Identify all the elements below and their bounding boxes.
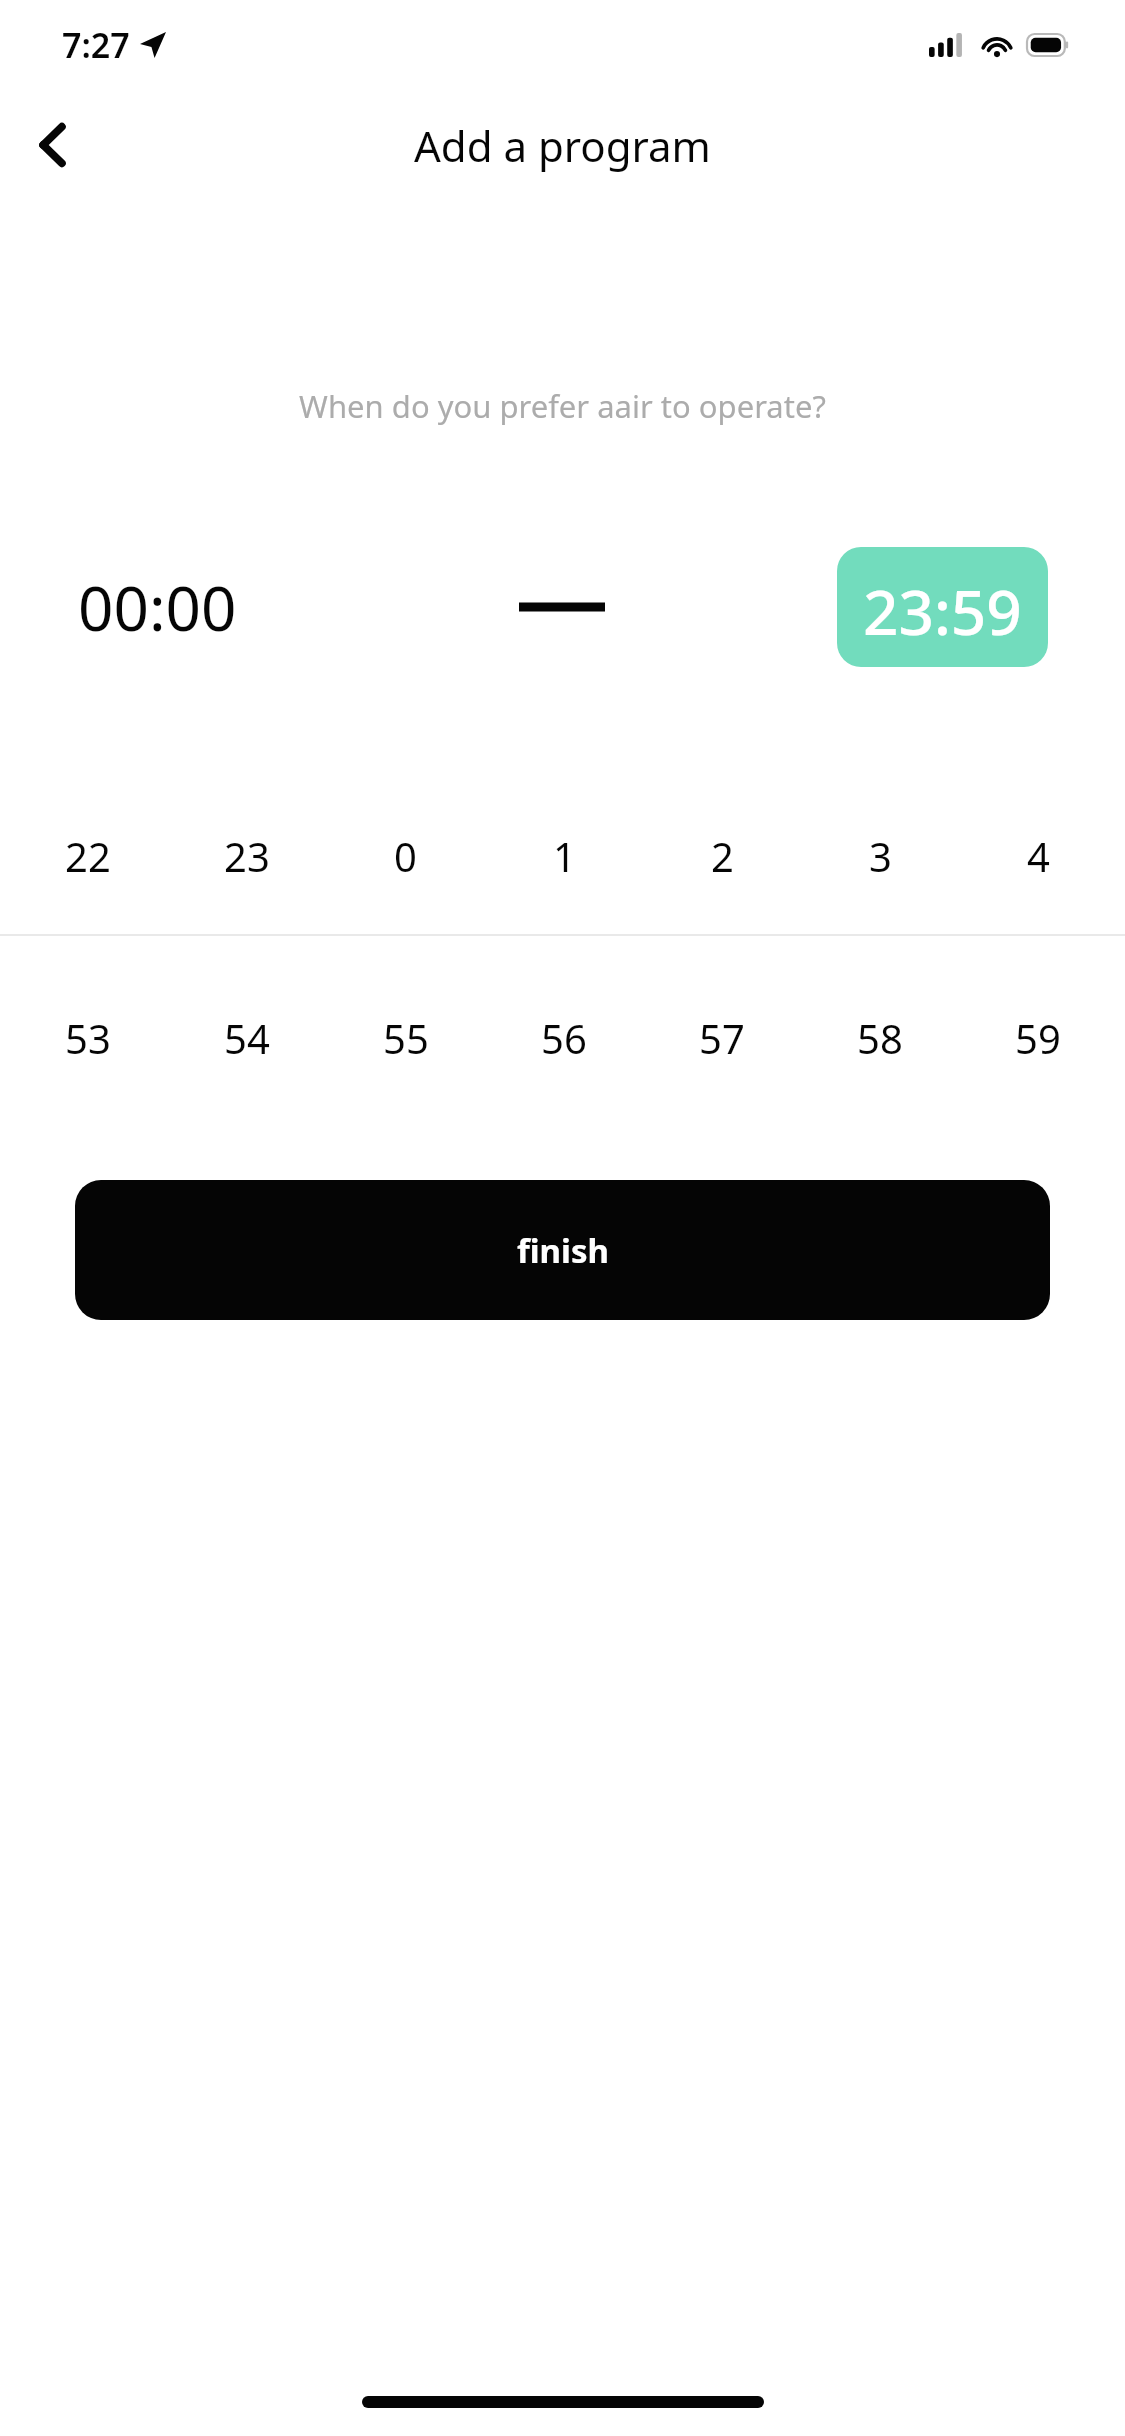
staticText: 3 [869,829,892,883]
button[interactable]: 22 [8,804,167,908]
button[interactable]: 0 [326,804,485,908]
button[interactable]: 54 [167,986,326,1090]
button[interactable]: 00:00 [0,547,519,667]
button[interactable]: 53 [8,986,167,1090]
button[interactable]: 57 [643,986,801,1090]
staticText: 1 [553,829,576,883]
button[interactable]: 59 [959,986,1117,1090]
staticText: 57 [699,1011,745,1065]
button[interactable]: 2 [643,804,801,908]
staticText: 56 [541,1011,587,1065]
button[interactable]: finish [75,1180,1050,1320]
staticText: 54 [224,1011,270,1065]
staticText: 2 [711,829,734,883]
button[interactable]: 56 [485,986,643,1090]
staticText: When do you prefer aair to operate? [0,385,1125,427]
staticText: 59 [1015,1011,1061,1065]
button[interactable]: 4 [959,804,1117,908]
staticText: finish [517,1228,609,1273]
staticText: 22 [65,829,111,883]
staticText: 23:59 [863,569,1022,645]
button[interactable]: 58 [801,986,959,1090]
button[interactable]: 3 [801,804,959,908]
staticText: 7:27 [62,22,130,68]
staticText: 23 [224,829,270,883]
staticText: Add a program [414,117,711,174]
button[interactable]: 55 [326,986,485,1090]
button[interactable]: 1 [485,804,643,908]
button[interactable]: 23:59 [837,547,1048,667]
button[interactable]: 23 [167,804,326,908]
staticText: 53 [65,1011,111,1065]
staticText: 58 [857,1011,903,1065]
button[interactable]: Back [16,109,88,181]
staticText: 55 [383,1011,429,1065]
staticText: 4 [1027,829,1050,883]
staticText: 0 [394,829,417,883]
staticText: 00:00 [78,565,237,649]
